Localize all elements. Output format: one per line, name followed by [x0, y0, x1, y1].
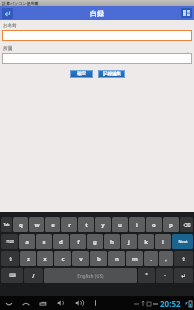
staticText: k — [144, 238, 148, 246]
button[interactable]: Shift right — [174, 251, 193, 266]
button[interactable] — [2, 30, 192, 41]
button[interactable]: l — [155, 234, 171, 249]
staticText: y — [101, 221, 105, 229]
staticText: ↵ — [181, 273, 186, 279]
staticText: 確定 — [77, 71, 86, 77]
staticText: d — [59, 238, 63, 246]
staticText: o — [152, 221, 156, 229]
staticText: e — [51, 221, 55, 229]
button[interactable]: ?123 — [1, 234, 18, 249]
staticText: w — [34, 221, 40, 229]
button[interactable]: s — [36, 234, 52, 249]
button[interactable]: Back — [2, 8, 13, 19]
staticText: g — [93, 238, 97, 246]
button[interactable]: w — [29, 217, 44, 232]
staticText: j — [128, 238, 130, 246]
button[interactable] — [2, 53, 192, 64]
staticText: お名前 — [3, 23, 17, 29]
staticText: z — [27, 255, 30, 263]
staticText: p — [169, 221, 173, 229]
button[interactable]: u — [112, 217, 128, 232]
staticText: English (US) — [77, 273, 104, 279]
button[interactable]: More — [94, 299, 97, 307]
staticText: ⇧ — [8, 256, 13, 262]
button[interactable]: Volume down — [56, 298, 66, 308]
button[interactable]: m — [126, 251, 143, 266]
staticText: 20:52 — [160, 298, 181, 309]
staticText: ⌫ — [183, 222, 191, 228]
button[interactable]: Back — [4, 299, 13, 308]
button[interactable]: Menu — [181, 8, 192, 18]
button[interactable]: p — [163, 217, 179, 232]
button[interactable]: · — [156, 268, 173, 283]
button[interactable]: g — [87, 234, 103, 249]
button[interactable]: j — [121, 234, 137, 249]
staticText: 記録編集 — [103, 71, 121, 77]
button[interactable]: e — [45, 217, 60, 232]
staticText: · — [164, 272, 166, 279]
button[interactable]: f — [70, 234, 86, 249]
button[interactable]: Enter — [174, 268, 193, 283]
staticText: i — [136, 221, 138, 229]
button[interactable]: Tab — [1, 217, 12, 232]
staticText: s — [42, 238, 46, 246]
button[interactable]: x — [37, 251, 53, 266]
staticText: m — [132, 255, 138, 263]
staticText: Tab — [3, 222, 10, 227]
button[interactable]: i — [129, 217, 145, 232]
staticText: Next — [178, 239, 188, 244]
staticText: ° — [145, 272, 148, 279]
staticText: c — [61, 255, 65, 263]
staticText: t — [85, 221, 88, 229]
button[interactable]: v — [72, 251, 89, 266]
button[interactable]: / — [24, 268, 43, 283]
button[interactable]: . — [144, 251, 158, 266]
staticText: f — [77, 238, 80, 246]
button[interactable]: b — [90, 251, 107, 266]
button[interactable]: 確定 — [70, 70, 93, 78]
staticText: l — [162, 238, 164, 246]
button[interactable]: h — [104, 234, 120, 249]
button[interactable]: z — [20, 251, 36, 266]
staticText: a — [25, 238, 29, 246]
button[interactable]: Keyboard switch — [1, 268, 23, 283]
staticText: . — [150, 255, 152, 263]
button[interactable]: Next — [172, 234, 193, 249]
button[interactable]: c — [54, 251, 71, 266]
button[interactable]: o — [146, 217, 162, 232]
button[interactable]: English (US) — [44, 268, 137, 283]
button[interactable]: Volume up — [74, 298, 84, 308]
button[interactable]: Home — [21, 299, 30, 308]
button[interactable]: r — [61, 217, 77, 232]
staticText: ⌨ — [9, 273, 16, 278]
staticText: n — [115, 255, 119, 263]
button[interactable]: a — [19, 234, 35, 249]
staticText: x — [43, 255, 47, 263]
staticText: b — [97, 255, 101, 263]
button[interactable]: 記録編集 — [98, 70, 125, 78]
staticText: 計算パソコン使用量 — [2, 1, 39, 6]
staticText: h — [110, 238, 114, 246]
staticText: ?123 — [6, 239, 14, 244]
staticText: / — [32, 272, 35, 279]
button[interactable]: Shift — [1, 251, 19, 266]
staticText: r — [68, 221, 71, 229]
button[interactable]: n — [108, 251, 125, 266]
button[interactable]: ° — [138, 268, 155, 283]
staticText: u — [118, 221, 122, 229]
button[interactable]: k — [138, 234, 154, 249]
button[interactable]: d — [53, 234, 69, 249]
button[interactable]: q — [13, 217, 28, 232]
button[interactable]: , — [159, 251, 173, 266]
staticText: 所属 — [3, 46, 12, 52]
staticText: , — [165, 255, 167, 263]
staticText: 白録 — [90, 9, 104, 18]
button[interactable]: Delete — [180, 217, 193, 232]
button[interactable]: t — [78, 217, 94, 232]
staticText: v — [79, 255, 83, 263]
button[interactable]: Recent apps — [38, 299, 47, 308]
staticText: ⇧ — [181, 256, 186, 262]
staticText: q — [19, 221, 23, 229]
button[interactable]: y — [95, 217, 111, 232]
